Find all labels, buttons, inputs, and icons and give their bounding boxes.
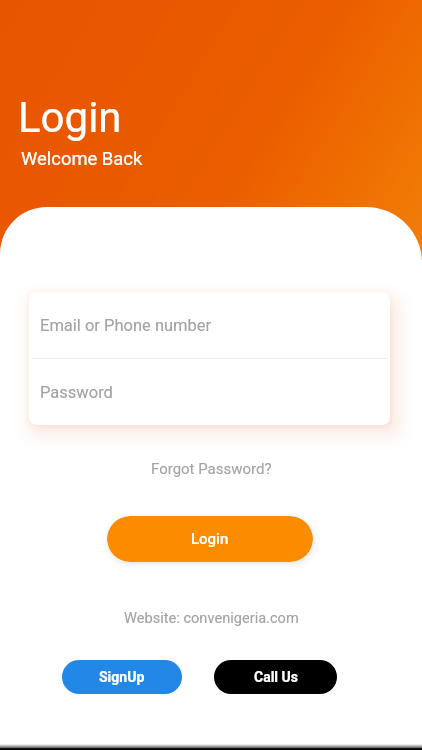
button[interactable]: Call Us (214, 660, 337, 694)
staticText: Welcome Back (21, 148, 143, 170)
staticText: Login (191, 530, 229, 548)
staticText: SignUp (99, 669, 145, 685)
staticText: Forgot Password? (151, 460, 272, 478)
staticText: Website: convenigeria.com (124, 609, 299, 626)
button[interactable]: Forgot Password? (141, 457, 282, 481)
button[interactable]: Email or Phone number (29, 292, 390, 358)
staticText: Login (18, 93, 122, 142)
button[interactable]: Password (29, 359, 390, 425)
staticText: Password (40, 383, 113, 402)
staticText: Email or Phone number (40, 316, 212, 335)
staticText: Call Us (254, 669, 298, 685)
button[interactable]: SignUp (62, 660, 182, 694)
button[interactable]: Login (107, 516, 313, 562)
